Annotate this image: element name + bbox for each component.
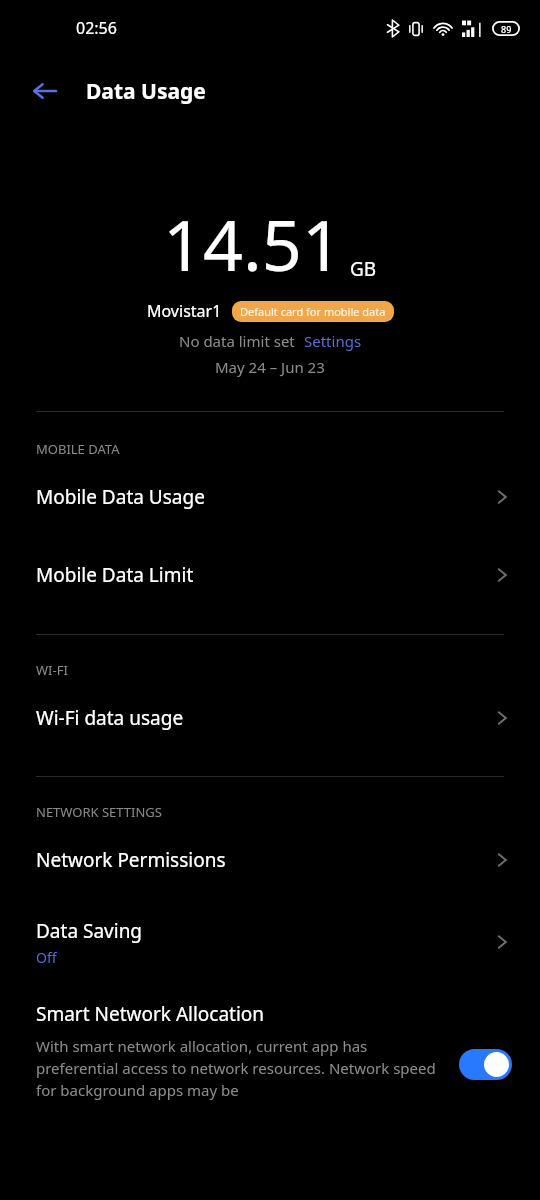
staticText: NETWORK SETTINGS xyxy=(36,803,162,821)
staticText: Network Permissions xyxy=(36,847,492,873)
staticText: Off xyxy=(36,948,57,967)
staticText: With smart network allocation, current a… xyxy=(36,1036,449,1101)
button[interactable]: Smart Network Allocation xyxy=(0,985,540,1101)
button[interactable]: Mobile Data Limit xyxy=(0,536,540,614)
staticText: Smart Network Allocation xyxy=(36,1001,265,1027)
button[interactable]: Back xyxy=(24,70,66,112)
staticText: Data Saving xyxy=(36,918,143,944)
staticText: MOBILE DATA xyxy=(36,440,120,458)
staticText: No data limit set xyxy=(179,331,295,351)
staticText: Settings xyxy=(304,331,362,351)
staticText: Default card for mobile data xyxy=(240,304,386,319)
staticText: Mobile Data Usage xyxy=(36,484,492,510)
staticText: 89 xyxy=(501,23,512,35)
staticText: Mobile Data Limit xyxy=(36,562,492,588)
staticText: 14.51 xyxy=(163,196,342,291)
button[interactable]: Smart Network Allocation xyxy=(459,1049,512,1080)
button[interactable]: Data Saving xyxy=(0,899,540,985)
staticText: Movistar1 xyxy=(147,300,222,322)
staticText: May 24 – Jun 23 xyxy=(215,357,325,377)
button[interactable]: Wi-Fi data usage xyxy=(0,679,540,757)
staticText: Wi-Fi data usage xyxy=(36,705,492,731)
staticText: Data Usage xyxy=(86,77,206,106)
button[interactable]: Mobile Data Usage xyxy=(0,458,540,536)
staticText: 02:56 xyxy=(76,17,117,39)
staticText: GB xyxy=(350,256,377,282)
button[interactable]: Network Permissions xyxy=(0,821,540,899)
button[interactable]: Default card for mobile data xyxy=(232,301,394,322)
button[interactable]: Settings xyxy=(304,331,362,351)
staticText: WI-FI xyxy=(36,661,68,679)
